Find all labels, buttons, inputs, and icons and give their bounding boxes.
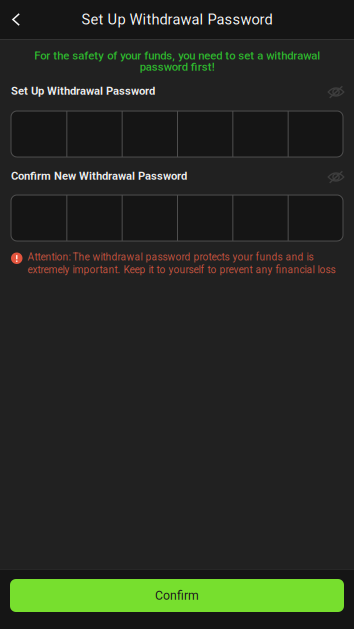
button[interactable]: Confirm bbox=[10, 579, 344, 612]
staticText: Set Up Withdrawal Password bbox=[11, 84, 155, 97]
button[interactable]: Back bbox=[0, 0, 32, 39]
button[interactable]: Show password bbox=[327, 83, 345, 99]
staticText: For the safety of your funds, you need t… bbox=[34, 49, 320, 74]
staticText: Confirm bbox=[155, 588, 199, 603]
staticText: Confirm New Withdrawal Password bbox=[11, 169, 187, 182]
button[interactable]: Show confirmation password bbox=[327, 168, 345, 184]
staticText: Attention: The withdrawal password prote… bbox=[27, 251, 335, 276]
staticText: Set Up Withdrawal Password bbox=[81, 11, 272, 28]
